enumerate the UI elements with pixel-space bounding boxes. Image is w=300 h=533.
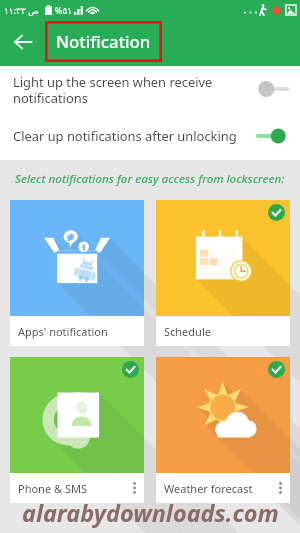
button[interactable]: Schedule <box>156 200 290 346</box>
button[interactable]: Clear up notifications after unlocking <box>0 116 300 156</box>
staticText: Light up the screen when receive notific… <box>13 73 213 106</box>
button[interactable]: Apps' notification <box>10 200 144 346</box>
staticText: Phone & SMS <box>18 481 87 496</box>
staticText: Weather forecast <box>164 481 253 496</box>
button[interactable]: More options <box>278 481 283 495</box>
button[interactable]: Back <box>8 27 38 57</box>
button[interactable]: Weather forecast <box>156 357 290 503</box>
staticText: ص ١١:٣٣ <box>4 4 39 16</box>
button[interactable]: Phone & SMS <box>10 357 144 503</box>
button[interactable]: Light up the screen when receive notific… <box>0 66 300 113</box>
staticText: alarabydownloads.com <box>22 497 279 529</box>
button[interactable]: Notification <box>45 21 162 62</box>
button[interactable]: More options <box>132 481 137 495</box>
staticText: %٥١ <box>55 4 73 16</box>
staticText: Notification <box>56 30 151 53</box>
staticText: Schedule <box>164 324 211 339</box>
staticText: Select notifications for easy access fro… <box>15 171 285 187</box>
staticText: Apps' notification <box>18 324 108 339</box>
staticText: Clear up notifications after unlocking <box>13 127 237 145</box>
